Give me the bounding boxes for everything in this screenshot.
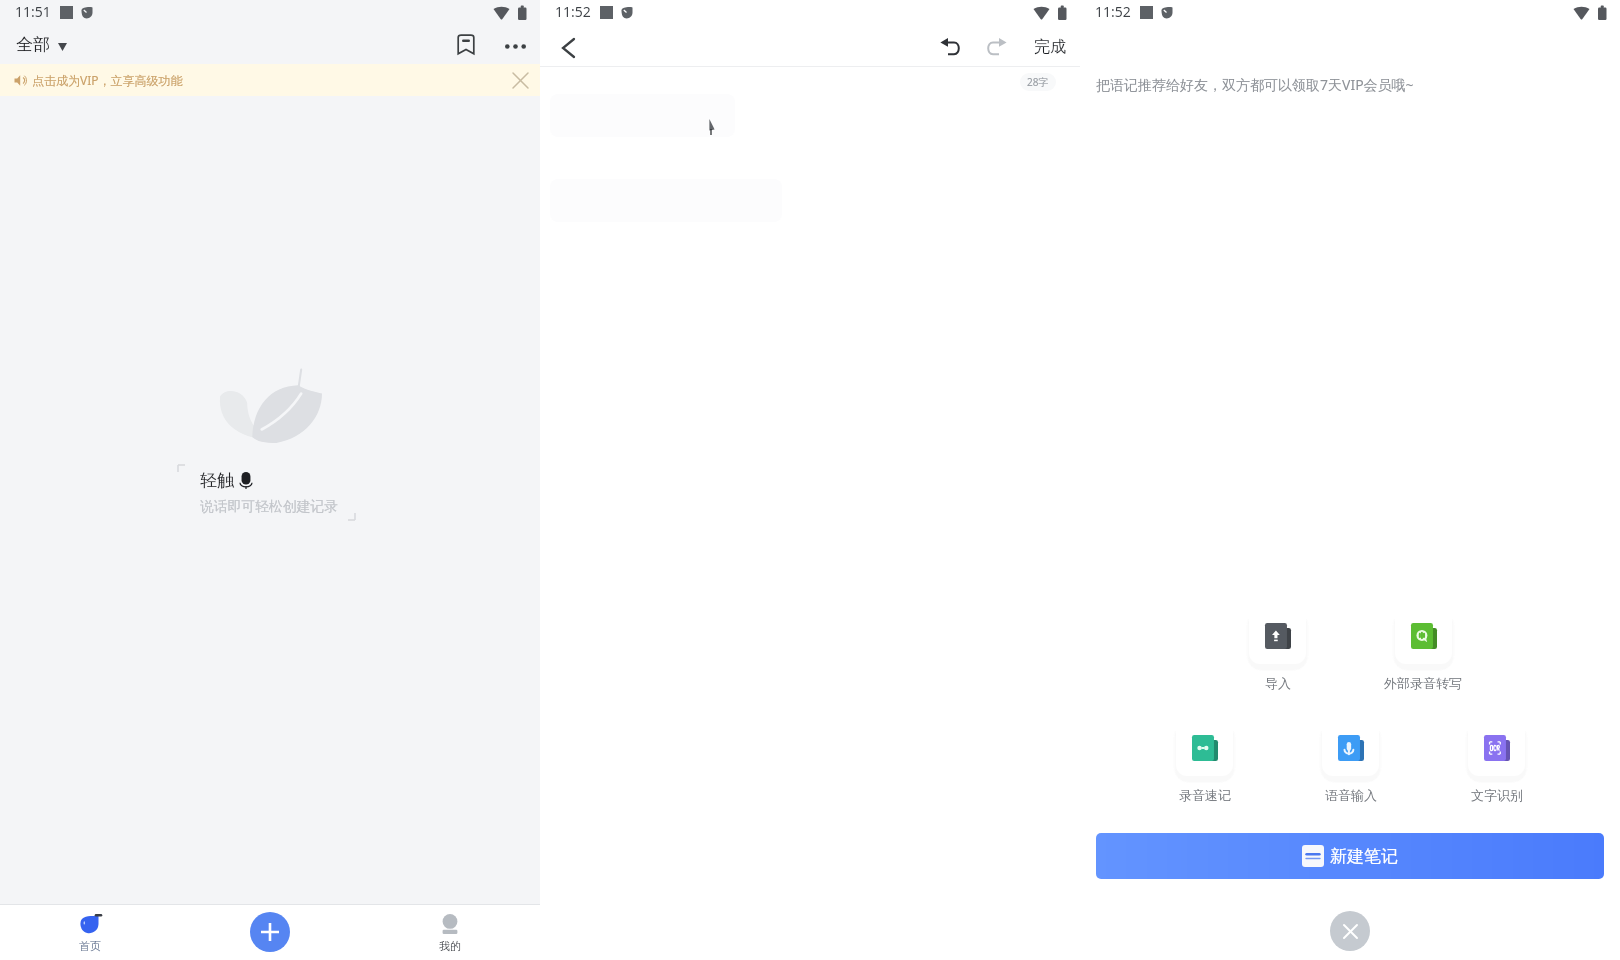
staticText: 语音输入: [1325, 787, 1377, 803]
staticText: 我的: [439, 939, 461, 953]
button[interactable]: Undo: [931, 27, 969, 65]
button[interactable]: 全部: [0, 34, 75, 55]
staticText: 全部: [16, 34, 50, 55]
staticText: 11:52: [555, 2, 591, 21]
button[interactable]: Bookmarks: [446, 26, 486, 62]
staticText: 11:51: [15, 2, 51, 21]
staticText: 外部录音转写: [1384, 675, 1462, 691]
button[interactable]: 我的: [360, 904, 540, 960]
staticText: 点击成为VIP，立享高级功能: [32, 72, 183, 88]
staticText: 轻触: [200, 470, 234, 491]
button[interactable]: 完成: [1024, 28, 1076, 66]
staticText: 说话即可轻松创建记录: [200, 498, 338, 515]
button[interactable]: Close: [1330, 911, 1370, 951]
button[interactable]: Redo: [978, 27, 1016, 65]
staticText: 把语记推荐给好友，双方都可以领取7天VIP会员哦~: [1096, 75, 1414, 94]
button[interactable]: More options: [495, 28, 535, 64]
staticText: 完成: [1034, 37, 1066, 57]
staticText: 28字: [1027, 75, 1049, 89]
button[interactable]: 首页: [0, 904, 180, 960]
staticText: 文字识别: [1471, 787, 1523, 803]
staticText: 新建笔记: [1330, 846, 1398, 867]
button[interactable]: New record: [250, 912, 290, 952]
staticText: 11:52: [1095, 2, 1131, 21]
button[interactable]: Close banner: [510, 70, 530, 90]
staticText: 录音速记: [1179, 787, 1231, 803]
button[interactable]: 文字识别: [1462, 713, 1531, 798]
staticText: 首页: [79, 939, 101, 953]
button[interactable]: Back: [550, 30, 586, 66]
button[interactable]: 新建笔记: [1096, 833, 1604, 879]
button[interactable]: 导入: [1243, 601, 1312, 686]
button[interactable]: 点击成为VIP，立享高级功能: [0, 64, 540, 96]
staticText: 导入: [1265, 675, 1291, 691]
button[interactable]: 录音速记: [1170, 713, 1239, 798]
button[interactable]: 外部录音转写: [1384, 601, 1462, 686]
button[interactable]: 语音输入: [1316, 713, 1385, 798]
